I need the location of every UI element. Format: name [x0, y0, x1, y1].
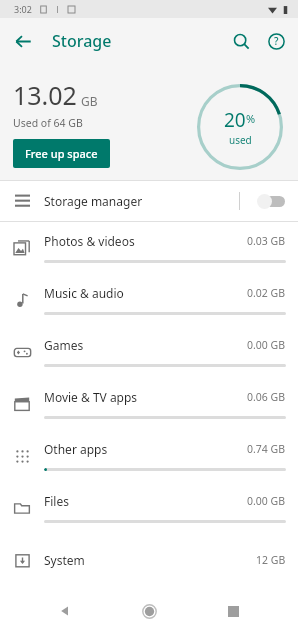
staticText: %	[246, 111, 256, 126]
staticText: 0.00 GB	[247, 338, 286, 352]
button[interactable]: Movie & TV apps	[0, 378, 298, 430]
staticText: Photos & videos	[44, 233, 247, 249]
button[interactable]: Back	[6, 24, 40, 58]
button[interactable]: Files	[0, 482, 298, 534]
staticText: Movie & TV apps	[44, 389, 247, 405]
button[interactable]: System	[0, 534, 298, 586]
staticText: Other apps	[44, 441, 247, 457]
staticText: 0.00 GB	[247, 494, 286, 508]
staticText: 0.74 GB	[247, 442, 286, 456]
staticText: 0.06 GB	[247, 390, 286, 404]
staticText: Storage	[52, 30, 112, 52]
button[interactable]: Home	[130, 592, 168, 630]
button[interactable]: Free up space	[13, 139, 110, 168]
button[interactable]: Other apps	[0, 430, 298, 482]
staticText: System	[44, 552, 256, 568]
staticText: 13.02	[13, 78, 77, 112]
staticText: Games	[44, 337, 247, 353]
button[interactable]: Search	[224, 24, 258, 58]
staticText: 3:02	[14, 3, 32, 15]
staticText: 0.03 GB	[247, 234, 286, 248]
staticText: 0.02 GB	[247, 286, 286, 300]
staticText: Storage manager	[44, 193, 239, 209]
button[interactable]: Storage manager toggle	[252, 186, 292, 216]
staticText: used	[229, 133, 252, 147]
staticText: Free up space	[25, 146, 98, 161]
button[interactable]: Back	[46, 592, 84, 630]
staticText: 12 GB	[256, 553, 286, 567]
button[interactable]: Games	[0, 326, 298, 378]
staticText: Music & audio	[44, 285, 247, 301]
button[interactable]: Music & audio	[0, 274, 298, 326]
button[interactable]: Help	[259, 24, 293, 58]
staticText: Used of 64 GB	[13, 116, 83, 130]
button[interactable]: Storage manager	[0, 181, 298, 221]
staticText: GB	[81, 93, 98, 109]
staticText: 20	[224, 107, 246, 133]
staticText: Files	[44, 493, 247, 509]
staticText: ?	[274, 34, 279, 48]
button[interactable]: Photos & videos	[0, 222, 298, 274]
button[interactable]: Recent apps	[214, 592, 252, 630]
